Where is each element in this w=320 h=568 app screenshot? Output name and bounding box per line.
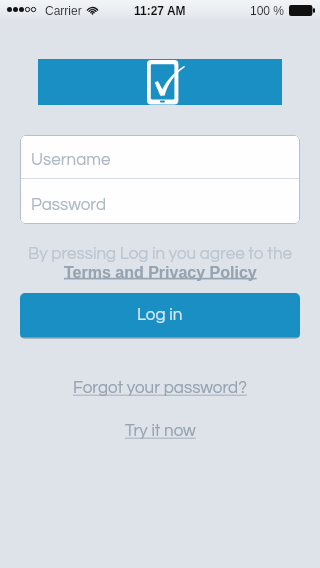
button[interactable]: Forgot your password? (73, 379, 247, 397)
button[interactable]: Username (20, 135, 300, 178)
staticText: Password (31, 196, 107, 214)
button[interactable]: Password (20, 179, 300, 224)
button[interactable]: Terms and Privacy Policy (64, 264, 257, 282)
staticText: Terms and Privacy Policy (64, 264, 257, 282)
button[interactable]: Try it now (125, 422, 196, 440)
staticText: By pressing Log in you agree to the (28, 245, 292, 263)
staticText: Try it now (125, 422, 196, 440)
staticText: Username (31, 151, 111, 169)
staticText: 100 % (250, 4, 285, 17)
staticText: Forgot your password? (73, 379, 247, 397)
button[interactable]: Log in (20, 293, 300, 339)
staticText: 11:27 AM (134, 4, 186, 17)
staticText: Log in (137, 306, 183, 324)
staticText: Carrier (45, 4, 82, 17)
